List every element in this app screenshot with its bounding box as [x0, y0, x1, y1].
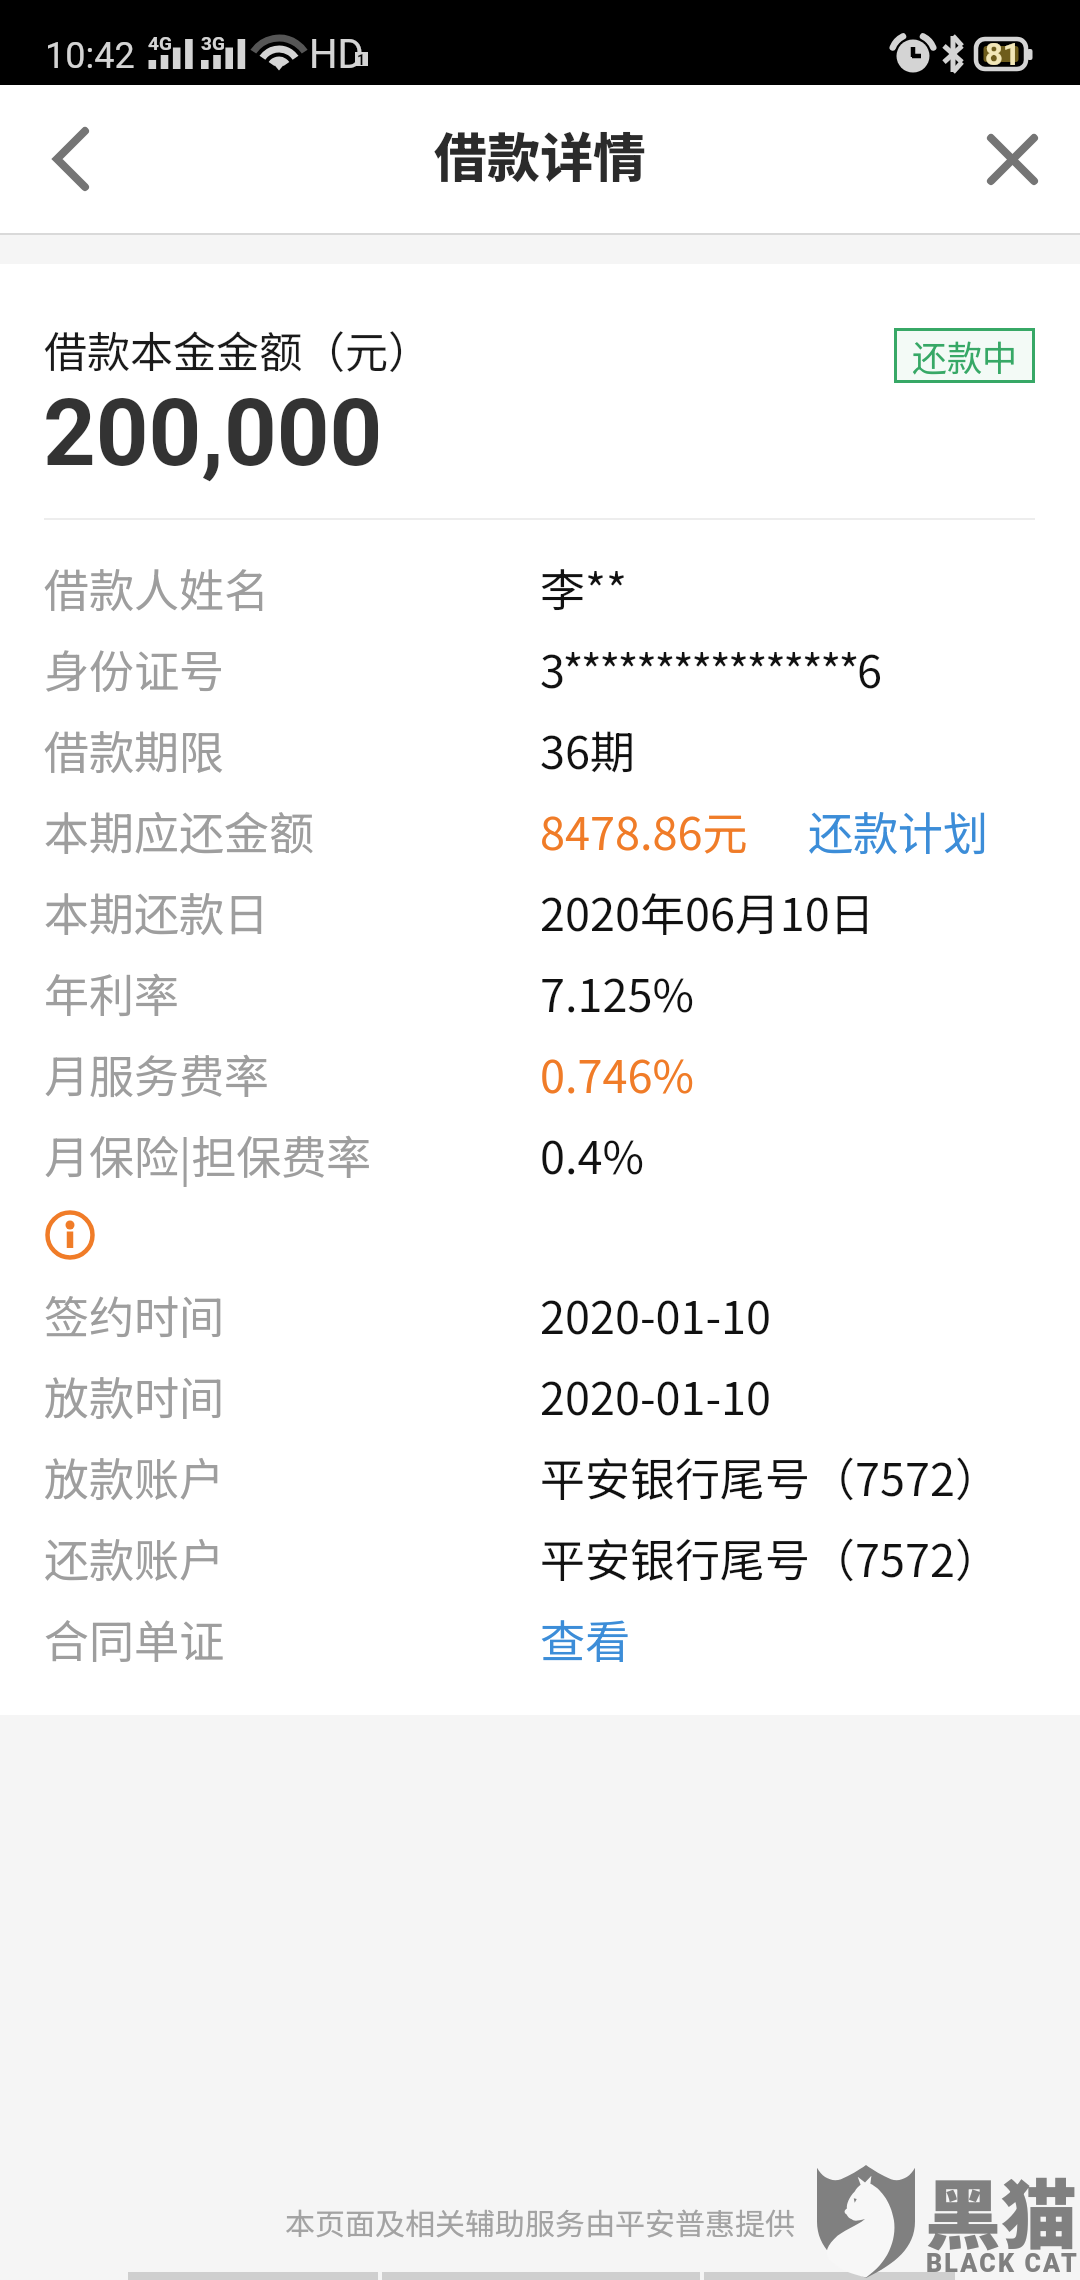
staticText: 本期应还金额 — [44, 798, 315, 863]
staticText: 黑猫 — [925, 2155, 1077, 2265]
staticText: 4G — [148, 32, 172, 54]
button[interactable]: 月保险|担保费率 — [0, 1114, 1080, 1195]
button[interactable]: 合同单证 — [0, 1598, 1080, 1679]
staticText: 还款账户 — [44, 1525, 225, 1590]
staticText: 月服务费率 — [44, 1041, 270, 1106]
button[interactable]: 本期应还金额 — [0, 790, 1080, 871]
staticText: HD — [309, 31, 364, 78]
staticText: 3G — [201, 32, 225, 54]
staticText: 2020年06月10日 — [540, 879, 875, 944]
staticText: 1 — [357, 52, 366, 66]
button[interactable]: 签约时间 — [0, 1274, 1080, 1355]
staticText: 2020-01-10 — [540, 1363, 772, 1428]
staticText: 借款期限 — [44, 717, 225, 782]
staticText: 借款本金金额（元） — [44, 318, 431, 380]
button[interactable]: Back — [3, 85, 139, 233]
staticText: 200,000 — [43, 380, 383, 488]
staticText: 借款人姓名 — [44, 555, 270, 620]
staticText: BLACK CAT — [926, 2249, 1079, 2278]
staticText: 平安银行尾号（7572） — [540, 1525, 1000, 1590]
button[interactable]: 年利率 — [0, 952, 1080, 1033]
other: 黑猫 BLACK CAT logo — [817, 2165, 1080, 2280]
staticText: 还款中 — [912, 330, 1018, 381]
button[interactable]: 借款期限 — [0, 709, 1080, 790]
button[interactable]: 身份证号 — [0, 628, 1080, 709]
staticText: 签约时间 — [44, 1282, 225, 1347]
staticText: 查看 — [540, 1606, 631, 1671]
staticText: 2020-01-10 — [540, 1282, 772, 1347]
button[interactable]: Info — [45, 1210, 95, 1260]
staticText: 10:42 — [45, 35, 135, 77]
staticText: 本页面及相关辅助服务由平安普惠提供 — [285, 2200, 795, 2243]
button[interactable]: 还款计划 — [778, 790, 1019, 871]
button[interactable]: 本期还款日 — [0, 871, 1080, 952]
button[interactable]: 放款时间 — [0, 1355, 1080, 1436]
staticText: 0.746% — [540, 1041, 694, 1106]
staticText: 月保险|担保费率 — [44, 1122, 372, 1187]
button[interactable]: 放款账户 — [0, 1436, 1080, 1517]
button[interactable]: Close — [944, 85, 1080, 233]
staticText: 3****************6 — [540, 636, 880, 701]
staticText: 身份证号 — [44, 636, 225, 701]
button[interactable]: 借款人姓名 — [0, 547, 1080, 628]
staticText: 年利率 — [44, 960, 180, 1025]
staticText: 本期还款日 — [44, 879, 270, 944]
staticText: 放款时间 — [44, 1363, 225, 1428]
staticText: 36期 — [540, 717, 635, 782]
staticText: 李** — [540, 555, 628, 620]
staticText: 借款详情 — [434, 116, 646, 193]
staticText: 合同单证 — [44, 1606, 225, 1671]
staticText: 0.4% — [540, 1122, 644, 1187]
button[interactable]: 还款中 — [894, 328, 1035, 383]
staticText: 还款计划 — [808, 798, 989, 863]
staticText: 放款账户 — [44, 1444, 225, 1509]
staticText: 8478.86元 — [540, 798, 748, 863]
staticText: 7.125% — [540, 960, 694, 1025]
button[interactable]: 月服务费率 — [0, 1033, 1080, 1114]
staticText: 平安银行尾号（7572） — [540, 1444, 1000, 1509]
button[interactable]: 还款账户 — [0, 1517, 1080, 1598]
staticText: 81 — [985, 36, 1021, 72]
